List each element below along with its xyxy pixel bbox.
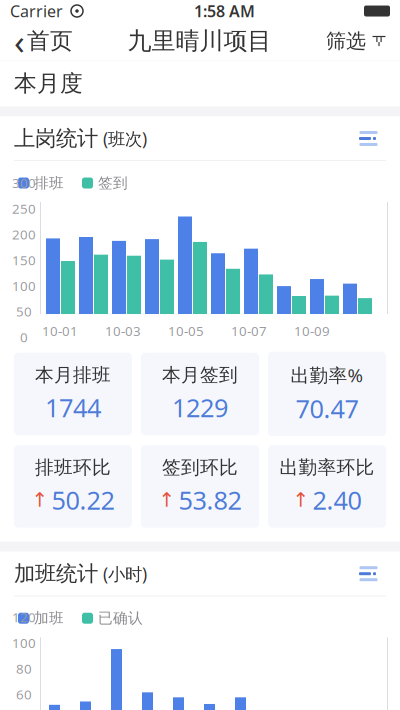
staticText: 已确认 xyxy=(98,609,143,627)
staticText: 50 xyxy=(16,303,32,320)
staticText: 首页 xyxy=(27,27,73,55)
staticText: 80 xyxy=(16,660,32,677)
staticText: ‹ xyxy=(14,18,25,64)
staticText: Carrier xyxy=(10,0,63,22)
staticText: (小时) xyxy=(98,562,147,585)
staticText: 10-01 xyxy=(42,322,78,340)
staticText: 60 xyxy=(16,685,32,703)
staticText: 加班统计 xyxy=(14,561,98,587)
staticText: 100 xyxy=(12,277,36,295)
staticText: 出勤率环比 xyxy=(279,456,374,479)
staticText: 150 xyxy=(12,251,36,269)
button[interactable]: 本月签到 xyxy=(141,353,259,435)
staticText: (班次) xyxy=(98,127,147,150)
staticText: 本月度 xyxy=(14,70,83,97)
staticText: 0 xyxy=(20,328,28,346)
button[interactable]: 本月排班 xyxy=(14,353,132,435)
staticText: 本月签到 xyxy=(162,364,238,387)
staticText: 100 xyxy=(12,634,36,652)
staticText: 120 xyxy=(12,608,36,626)
staticText: 70.47 xyxy=(295,391,358,425)
staticText: 本月排班 xyxy=(35,364,111,387)
button[interactable]: 出勤率环比 xyxy=(268,445,386,528)
staticText: 签到环比 xyxy=(162,456,238,479)
staticText: 10-03 xyxy=(105,322,141,340)
staticText: 上岗统计 xyxy=(14,125,98,152)
button[interactable]: 切换统计视图 xyxy=(359,558,386,589)
button[interactable]: 签到环比 xyxy=(141,445,259,528)
staticText: 九里晴川项目 xyxy=(127,26,271,56)
staticText: 1744 xyxy=(45,391,101,424)
staticText: ↑ xyxy=(292,489,309,511)
button[interactable]: 出勤率% xyxy=(268,352,386,436)
staticText: 10-05 xyxy=(168,322,204,340)
staticText: 签到 xyxy=(98,174,128,192)
button[interactable]: 排班环比 xyxy=(14,445,132,528)
staticText: 250 xyxy=(12,200,36,217)
staticText: 50.22 xyxy=(51,483,114,517)
staticText: 加班 xyxy=(34,609,64,627)
staticText: 200 xyxy=(12,225,36,243)
staticText: 1:58 AM xyxy=(194,0,255,22)
staticText: 2.40 xyxy=(312,483,361,517)
staticText: 53.82 xyxy=(178,483,241,517)
staticText: 排班 xyxy=(34,174,64,192)
staticText: 1229 xyxy=(172,391,228,424)
staticText: ↑ xyxy=(158,489,175,511)
staticText: ↑ xyxy=(31,489,48,511)
button[interactable]: 切换统计视图 xyxy=(359,123,386,154)
staticText: 10-07 xyxy=(231,322,267,340)
staticText: 300 xyxy=(12,174,36,192)
button[interactable]: 筛选 xyxy=(316,25,396,57)
staticText: 10-09 xyxy=(294,322,330,340)
staticText: 出勤率% xyxy=(290,363,363,387)
button[interactable]: ‹ xyxy=(4,14,83,68)
staticText: 筛选 xyxy=(326,29,366,53)
staticText: 排班环比 xyxy=(35,456,111,479)
